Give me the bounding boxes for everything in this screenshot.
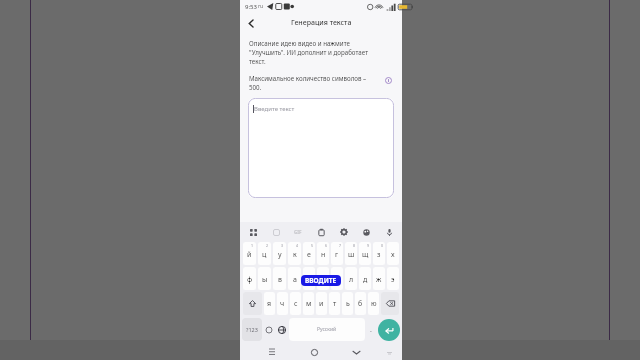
button[interactable]: х xyxy=(387,242,399,265)
staticText: м xyxy=(306,299,312,309)
button[interactable]: ж xyxy=(373,267,385,290)
button[interactable]: а xyxy=(288,267,301,290)
button[interactable]: Stickers xyxy=(269,225,283,239)
button[interactable]: э xyxy=(387,267,399,290)
staticText: ц xyxy=(262,250,267,260)
button[interactable]: 4 xyxy=(288,242,301,265)
staticText: п xyxy=(307,275,312,285)
button[interactable]: Voice input xyxy=(382,225,396,239)
button[interactable]: о xyxy=(331,267,343,290)
staticText: 2 xyxy=(266,243,269,248)
staticText: 9 xyxy=(367,243,370,248)
staticText: 1 xyxy=(251,243,254,248)
button[interactable]: 1 xyxy=(243,242,256,265)
button[interactable]: Clipboard xyxy=(314,225,328,239)
staticText: 3 xyxy=(281,243,284,248)
button[interactable]: б xyxy=(355,292,366,315)
button[interactable]: м xyxy=(303,292,314,315)
button[interactable]: п xyxy=(303,267,315,290)
button[interactable]: Info xyxy=(383,75,393,85)
staticText: 7 xyxy=(339,243,342,248)
button[interactable]: 6 xyxy=(317,242,329,265)
staticText: Введите текст xyxy=(254,105,295,113)
button[interactable]: ч xyxy=(277,292,288,315)
button[interactable]: р xyxy=(317,267,329,290)
button[interactable]: ф xyxy=(243,267,256,290)
button[interactable]: т xyxy=(329,292,340,315)
button[interactable]: 5 xyxy=(303,242,315,265)
staticText: 0 xyxy=(381,243,384,248)
staticText: ВВОДИТЕ xyxy=(305,276,337,285)
button[interactable]: Emoji xyxy=(262,318,275,341)
staticText: к xyxy=(293,250,297,260)
staticText: . xyxy=(370,325,372,335)
staticText: Максимальное количество символов – 500. xyxy=(249,74,383,92)
staticText: й xyxy=(247,250,252,260)
button[interactable]: и xyxy=(316,292,327,315)
button[interactable]: д xyxy=(359,267,371,290)
button[interactable]: ь xyxy=(342,292,353,315)
staticText: ю xyxy=(371,299,377,309)
staticText: ь xyxy=(346,299,350,309)
button[interactable]: 9 xyxy=(359,242,371,265)
button[interactable]: 7 xyxy=(331,242,343,265)
button[interactable]: я xyxy=(264,292,275,315)
staticText: т xyxy=(333,299,337,309)
staticText: в xyxy=(278,275,282,285)
staticText: о xyxy=(335,275,340,285)
staticText: х xyxy=(391,250,395,260)
staticText: ж xyxy=(376,275,382,285)
staticText: щ xyxy=(362,250,369,260)
button[interactable]: 0 xyxy=(373,242,385,265)
button[interactable]: Back xyxy=(243,15,259,31)
button[interactable]: ю xyxy=(368,292,379,315)
button[interactable]: Period xyxy=(365,318,377,341)
staticText: ru xyxy=(258,3,264,10)
staticText: э xyxy=(391,275,395,285)
staticText: GIF xyxy=(294,229,302,235)
staticText: г xyxy=(335,250,339,260)
button[interactable]: Change language xyxy=(275,318,289,341)
staticText: с xyxy=(294,299,298,309)
staticText: Генерация текста xyxy=(291,18,352,28)
staticText: з xyxy=(377,250,381,260)
button[interactable]: Shift xyxy=(243,292,262,315)
staticText: б xyxy=(358,299,363,309)
staticText: л xyxy=(349,275,354,285)
staticText: ?123 xyxy=(246,326,258,333)
button[interactable]: в xyxy=(273,267,286,290)
staticText: н xyxy=(321,250,326,260)
button[interactable]: Русский xyxy=(289,318,365,341)
staticText: 8 xyxy=(353,243,356,248)
staticText: а xyxy=(293,275,297,285)
button[interactable]: ?123 xyxy=(242,318,262,341)
button[interactable]: л xyxy=(345,267,357,290)
staticText: у xyxy=(278,250,282,260)
button[interactable]: Введите текст xyxy=(248,98,394,198)
button[interactable]: Apps xyxy=(246,225,260,239)
staticText: я xyxy=(267,299,272,309)
button[interactable]: Recents xyxy=(265,345,279,359)
staticText: ч xyxy=(280,299,285,309)
staticText: 4 xyxy=(296,243,299,248)
staticText: Описание идею видео и нажмите "Улучшить"… xyxy=(249,39,369,66)
button[interactable]: Backspace xyxy=(381,292,399,315)
button[interactable]: Home xyxy=(307,345,321,359)
button[interactable]: 3 xyxy=(273,242,286,265)
button[interactable]: ы xyxy=(258,267,271,290)
staticText: Русский xyxy=(317,326,337,333)
staticText: 5 xyxy=(311,243,314,248)
staticText: ы xyxy=(262,275,268,285)
staticText: 6 xyxy=(325,243,328,248)
button[interactable]: Settings xyxy=(337,225,351,239)
button[interactable]: 8 xyxy=(345,242,357,265)
staticText: д xyxy=(363,275,368,285)
staticText: 9:53 xyxy=(245,3,257,11)
button[interactable]: Theme xyxy=(359,225,373,239)
button[interactable]: с xyxy=(290,292,301,315)
staticText: ф xyxy=(247,275,253,285)
button[interactable]: Back xyxy=(349,345,363,359)
button[interactable]: GIF xyxy=(291,225,305,239)
button[interactable]: 2 xyxy=(258,242,271,265)
button[interactable]: Enter xyxy=(378,319,400,341)
